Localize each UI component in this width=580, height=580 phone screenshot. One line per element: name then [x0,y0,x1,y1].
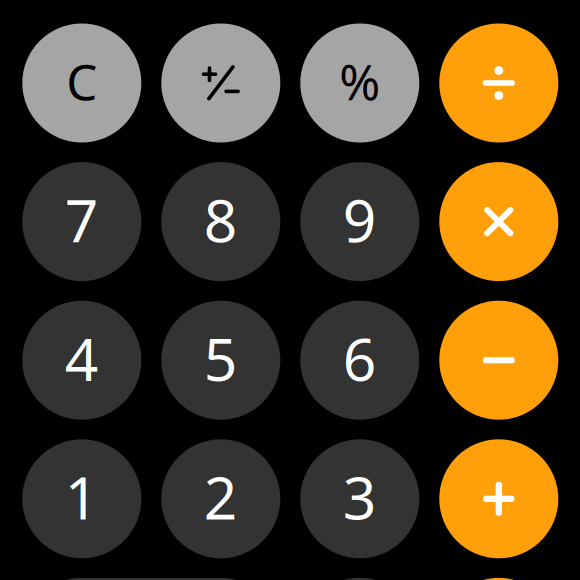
button[interactable]: 4 [22,301,141,420]
button[interactable]: 9 [300,162,419,281]
staticText: 1 [65,458,99,536]
button[interactable]: Multiply [439,162,558,281]
button[interactable]: 7 [22,162,141,281]
staticText: 9 [343,181,377,258]
button[interactable]: 6 [300,301,419,420]
button[interactable]: 3 [300,439,419,558]
staticText: 6 [343,319,377,397]
button[interactable]: % [300,23,419,142]
button[interactable]: 2 [161,439,280,558]
button[interactable]: 8 [161,162,280,281]
button[interactable]: = [439,578,558,580]
button[interactable]: . [300,578,419,580]
staticText: 2 [204,458,238,536]
button[interactable]: 5 [161,301,280,420]
button[interactable]: C [22,23,141,142]
button[interactable]: 0 [22,578,280,580]
staticText: 8 [204,181,238,258]
button[interactable]: Minus [439,301,558,420]
staticText: 7 [65,181,99,258]
button[interactable]: Plus [439,439,558,558]
staticText: 4 [65,319,99,397]
staticText: % [339,48,380,114]
button[interactable]: 1 [22,439,141,558]
staticText: 3 [343,458,377,536]
button[interactable]: Toggle sign [161,23,280,142]
staticText: 5 [204,319,238,397]
staticText: C [66,48,97,114]
button[interactable]: Divide [439,23,558,142]
